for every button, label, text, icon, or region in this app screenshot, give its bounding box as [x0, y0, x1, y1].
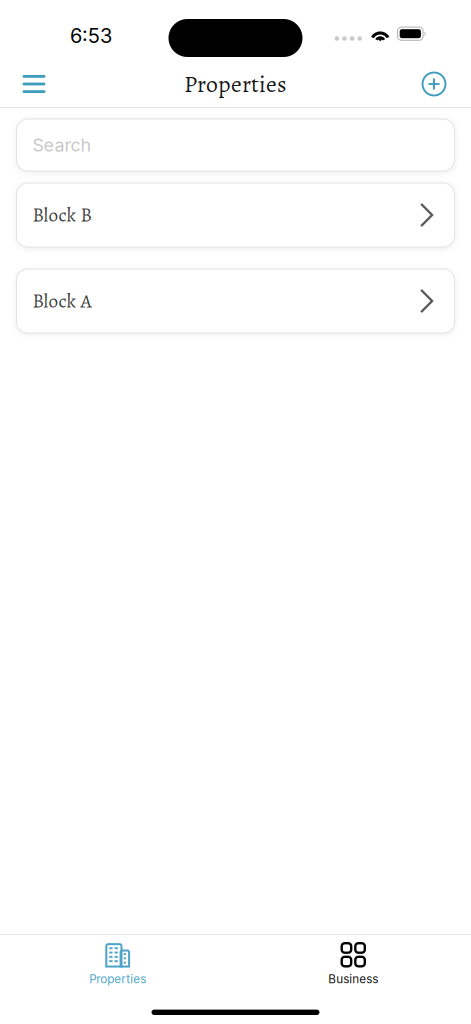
- staticText: Block A: [32, 288, 91, 314]
- staticText: Block B: [32, 202, 91, 228]
- button[interactable]: Menu: [12, 62, 56, 106]
- button[interactable]: Business: [235, 935, 471, 986]
- staticText: 6:53: [70, 23, 112, 48]
- staticText: Properties: [89, 972, 146, 986]
- button[interactable]: Add: [412, 62, 456, 106]
- staticText: Search: [32, 134, 91, 156]
- staticText: Business: [328, 972, 378, 986]
- button[interactable]: Properties: [0, 935, 235, 986]
- button[interactable]: Block A: [16, 269, 454, 333]
- button[interactable]: Block B: [16, 183, 454, 247]
- staticText: Properties: [184, 68, 287, 100]
- button[interactable]: Search: [16, 119, 454, 171]
